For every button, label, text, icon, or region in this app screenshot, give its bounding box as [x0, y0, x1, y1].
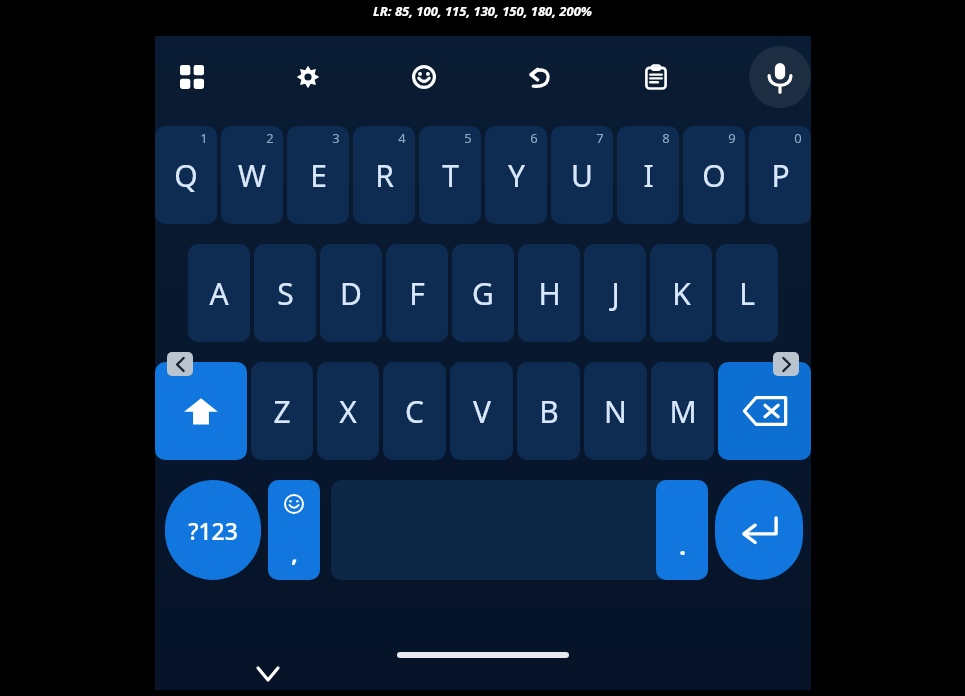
- staticText: Y: [508, 155, 525, 196]
- staticText: 8: [662, 129, 670, 147]
- button[interactable]: Apps: [169, 54, 215, 100]
- button[interactable]: G: [452, 244, 514, 342]
- staticText: M: [669, 391, 697, 432]
- staticText: K: [672, 273, 691, 314]
- staticText: X: [339, 391, 357, 432]
- button[interactable]: N: [584, 362, 647, 460]
- button[interactable]: Emoji: [401, 54, 447, 100]
- button[interactable]: J: [584, 244, 646, 342]
- staticText: 5: [464, 129, 472, 147]
- button[interactable]: Hide keyboard: [248, 654, 288, 694]
- staticText: S: [277, 273, 294, 314]
- button[interactable]: R: [353, 126, 415, 224]
- staticText: 9: [728, 129, 736, 147]
- button[interactable]: T: [419, 126, 481, 224]
- button[interactable]: O: [683, 126, 745, 224]
- button[interactable]: X: [317, 362, 379, 460]
- staticText: D: [340, 273, 362, 314]
- button[interactable]: K: [650, 244, 712, 342]
- button[interactable]: A: [188, 244, 250, 342]
- button[interactable]: Undo: [517, 54, 563, 100]
- staticText: G: [472, 273, 494, 314]
- staticText: O: [702, 155, 726, 196]
- staticText: 6: [530, 129, 538, 147]
- button[interactable]: W: [221, 126, 283, 224]
- staticText: B: [539, 391, 559, 432]
- staticText: F: [409, 273, 425, 314]
- staticText: ,: [291, 538, 298, 568]
- staticText: 4: [398, 129, 406, 147]
- staticText: A: [209, 273, 229, 314]
- button[interactable]: V: [450, 362, 513, 460]
- button[interactable]: Enter: [715, 480, 803, 580]
- staticText: Z: [273, 391, 291, 432]
- button[interactable]: Q: [155, 126, 217, 224]
- button[interactable]: Previous: [167, 352, 193, 376]
- button[interactable]: Shift: [155, 362, 247, 460]
- staticText: U: [571, 155, 593, 196]
- staticText: LR: 85, 100, 115, 130, 150, 180, 200%: [373, 2, 592, 20]
- staticText: I: [643, 155, 654, 196]
- staticText: 0: [794, 129, 802, 147]
- staticText: V: [473, 391, 491, 432]
- button[interactable]: Z: [251, 362, 313, 460]
- staticText: L: [739, 273, 755, 314]
- button[interactable]: P: [749, 126, 811, 224]
- button[interactable]: Next: [773, 352, 799, 376]
- button[interactable]: Emoji and comma: [268, 480, 320, 580]
- staticText: .: [679, 529, 686, 562]
- button[interactable]: Y: [485, 126, 547, 224]
- button[interactable]: Settings: [285, 54, 331, 100]
- staticText: E: [310, 155, 327, 196]
- button[interactable]: .: [656, 480, 708, 580]
- staticText: 3: [332, 129, 340, 147]
- button[interactable]: U: [551, 126, 613, 224]
- button[interactable]: E: [287, 126, 349, 224]
- staticText: ?123: [188, 515, 238, 546]
- button[interactable]: B: [517, 362, 580, 460]
- staticText: C: [405, 391, 424, 432]
- button[interactable]: H: [518, 244, 580, 342]
- button[interactable]: S: [254, 244, 316, 342]
- staticText: 7: [596, 129, 604, 147]
- button[interactable]: C: [383, 362, 446, 460]
- staticText: H: [538, 273, 561, 314]
- staticText: 2: [266, 129, 274, 147]
- button[interactable]: Voice input: [749, 46, 811, 108]
- button[interactable]: Backspace: [718, 362, 811, 460]
- staticText: P: [771, 155, 790, 196]
- button[interactable]: M: [651, 362, 714, 460]
- staticText: Q: [174, 155, 198, 196]
- staticText: J: [611, 273, 620, 314]
- button[interactable]: L: [716, 244, 778, 342]
- staticText: N: [604, 391, 627, 432]
- staticText: R: [375, 155, 394, 196]
- staticText: T: [442, 155, 459, 196]
- button[interactable]: Space: [331, 480, 691, 580]
- button[interactable]: D: [320, 244, 382, 342]
- button[interactable]: Clipboard: [633, 54, 679, 100]
- staticText: W: [238, 155, 266, 196]
- button[interactable]: ?123: [165, 480, 261, 580]
- button[interactable]: I: [617, 126, 679, 224]
- button[interactable]: F: [386, 244, 448, 342]
- staticText: 1: [200, 129, 208, 147]
